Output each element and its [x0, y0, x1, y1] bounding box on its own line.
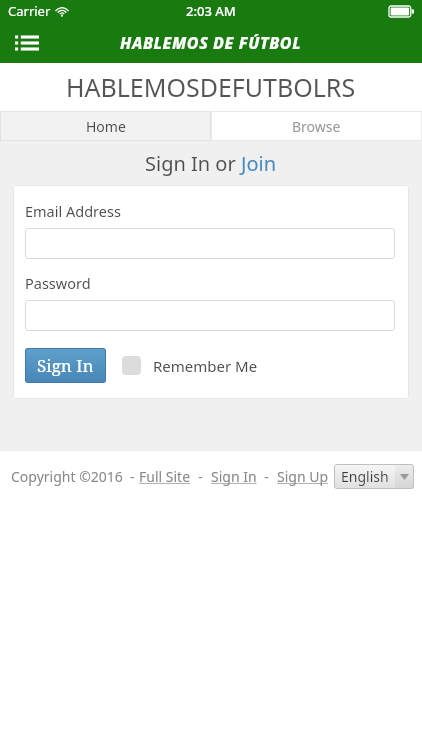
staticText: Password	[25, 273, 91, 293]
staticText: 2:03 AM	[186, 2, 236, 20]
staticText: Sign Up	[277, 467, 329, 486]
staticText: Sign In or	[145, 150, 241, 177]
staticText: HABLEMOS DE FÚTBOL	[120, 32, 302, 54]
button[interactable]: Full Site	[139, 467, 191, 486]
button[interactable]: Menu	[8, 26, 46, 60]
staticText: Carrier	[8, 2, 51, 20]
staticText: Join	[241, 150, 277, 177]
button[interactable]: Home	[0, 111, 211, 141]
staticText: Full Site	[139, 467, 191, 486]
staticText: HABLEMOSDEFUTBOLRS	[66, 70, 356, 104]
staticText: -	[191, 467, 211, 486]
button[interactable]: Sign In	[37, 354, 94, 377]
staticText: Browse	[292, 117, 341, 136]
button[interactable]	[25, 228, 395, 259]
staticText: Home	[86, 117, 126, 136]
button[interactable]: Sign Up	[277, 467, 329, 486]
button[interactable]: English	[334, 464, 414, 489]
staticText: Sign In	[37, 354, 94, 377]
button[interactable]: Browse	[211, 111, 422, 141]
staticText: -	[257, 467, 277, 486]
button[interactable]	[25, 300, 395, 331]
staticText: Sign In	[211, 467, 257, 486]
button[interactable]: Join	[241, 150, 277, 177]
staticText: Remember Me	[153, 356, 258, 376]
button[interactable]: Sign In	[211, 467, 257, 486]
button[interactable]: Remember Me checkbox	[122, 356, 141, 375]
staticText: English	[341, 467, 389, 486]
staticText: Copyright ©2016 -	[11, 467, 139, 486]
staticText: Email Address	[25, 201, 121, 221]
